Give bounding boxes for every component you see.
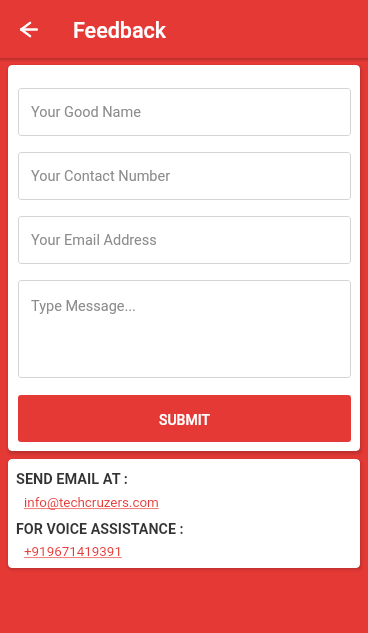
- staticText: Feedback: [73, 18, 167, 43]
- staticText: Your Contact Number: [31, 168, 171, 185]
- button[interactable]: info@techcruzers.com: [24, 495, 159, 511]
- button[interactable]: +919671419391: [24, 544, 122, 560]
- staticText: Your Good Name: [31, 104, 141, 121]
- staticText: Your Email Address: [31, 232, 157, 249]
- staticText: +919671419391: [24, 544, 122, 560]
- button[interactable]: Your Contact Number: [18, 152, 351, 200]
- button[interactable]: SUBMIT: [18, 395, 351, 442]
- staticText: FOR VOICE ASSISTANCE :: [16, 521, 184, 538]
- staticText: info@techcruzers.com: [24, 495, 159, 511]
- staticText: Type Message...: [31, 298, 136, 315]
- button[interactable]: Your Email Address: [18, 216, 351, 264]
- button[interactable]: Your Good Name: [18, 88, 351, 136]
- staticText: SUBMIT: [159, 412, 210, 428]
- button[interactable]: Type Message...: [18, 280, 351, 378]
- staticText: SEND EMAIL AT :: [16, 471, 128, 488]
- button[interactable]: Back: [9, 9, 49, 49]
